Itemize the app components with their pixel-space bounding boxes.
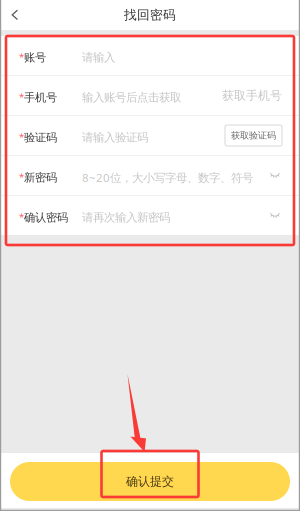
staticText: 请输入: [82, 50, 115, 65]
staticText: 输入账号后点击获取: [82, 90, 181, 105]
staticText: *: [19, 211, 24, 223]
staticText: 获取手机号: [222, 88, 282, 103]
staticText: 验证码: [24, 130, 57, 144]
button[interactable]: Show confirm password: [268, 205, 282, 225]
staticText: *: [19, 51, 24, 63]
staticText: 账号: [24, 50, 46, 64]
staticText: 8~20位，大小写字母、数字、符号: [82, 170, 253, 185]
staticText: 新密码: [24, 170, 57, 184]
staticText: 请输入验证码: [82, 130, 148, 145]
staticText: 手机号: [24, 90, 57, 104]
staticText: 获取验证码: [231, 130, 276, 141]
staticText: *: [19, 91, 24, 103]
button[interactable]: Back: [0, 0, 30, 30]
staticText: 请再次输入新密码: [82, 210, 170, 225]
button[interactable]: Show password: [268, 165, 282, 185]
staticText: 找回密码: [124, 7, 176, 23]
staticText: 确认提交: [126, 474, 174, 489]
button[interactable]: 获取验证码: [225, 125, 282, 146]
button[interactable]: 获取手机号: [222, 88, 282, 103]
staticText: *: [19, 171, 24, 183]
staticText: 确认密码: [24, 210, 68, 224]
staticText: *: [19, 131, 24, 143]
button[interactable]: 确认提交: [10, 462, 290, 501]
